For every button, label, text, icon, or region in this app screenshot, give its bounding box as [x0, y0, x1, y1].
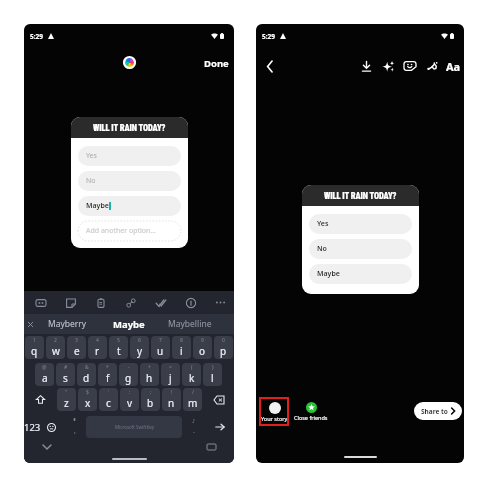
button[interactable]: 2 — [46, 336, 65, 359]
button[interactable]: & — [77, 363, 96, 386]
button[interactable]: 9 — [193, 336, 212, 359]
staticText: 3 — [75, 337, 78, 344]
button[interactable]: Close — [24, 314, 37, 334]
button[interactable]: Color — [124, 57, 135, 68]
staticText: @ — [42, 364, 47, 371]
button[interactable]: No — [309, 239, 412, 259]
staticText: p — [220, 344, 227, 358]
button[interactable]: ! — [162, 388, 181, 411]
button[interactable]: Enter — [206, 416, 234, 438]
button[interactable]: / — [183, 388, 202, 411]
staticText: Yes — [86, 151, 97, 161]
button[interactable]: Maybe — [98, 314, 159, 334]
button[interactable]: Clipboard — [86, 291, 116, 314]
button[interactable]: Your story — [259, 397, 289, 426]
button[interactable]: Spell check — [146, 291, 176, 314]
staticText: No — [317, 244, 327, 254]
staticText: s — [63, 371, 68, 385]
button[interactable]: Add another option... — [78, 221, 181, 241]
button[interactable]: 8 — [172, 336, 191, 359]
button[interactable]: Keyboard — [204, 440, 218, 454]
button[interactable]: Effects — [379, 57, 397, 75]
staticText: t — [117, 344, 121, 358]
staticText: 2 — [54, 337, 57, 344]
button[interactable]: Maybe — [309, 264, 412, 284]
button[interactable]: 6 — [130, 336, 149, 359]
button[interactable]: 5 — [109, 336, 128, 359]
button[interactable]: $ — [78, 388, 97, 411]
button[interactable]: No — [78, 171, 181, 191]
button[interactable]: * — [98, 363, 117, 386]
button[interactable]: Hide — [40, 440, 54, 454]
button[interactable]: - — [119, 363, 138, 386]
staticText: No — [86, 176, 96, 186]
staticText: ' — [108, 389, 110, 396]
staticText: Done — [204, 57, 229, 70]
button[interactable]: 123 — [24, 416, 41, 438]
button[interactable]: = — [161, 363, 180, 386]
staticText: & — [85, 364, 89, 371]
button[interactable]: Back — [262, 58, 278, 74]
button[interactable]: Draw — [423, 57, 441, 75]
staticText: 6 — [138, 337, 141, 344]
button[interactable]: ) — [203, 363, 222, 386]
button[interactable]: Close friends — [292, 402, 330, 421]
button[interactable]: : — [120, 388, 139, 411]
button[interactable]: Space — [86, 416, 182, 438]
staticText: Aa — [446, 59, 461, 74]
button[interactable]: # — [56, 363, 75, 386]
button[interactable]: @ — [35, 363, 54, 386]
staticText: 5:29 — [30, 32, 43, 41]
staticText: h — [146, 371, 153, 385]
staticText: m — [188, 396, 198, 410]
button[interactable]: Backspace — [204, 388, 233, 411]
button[interactable]: ( — [182, 363, 201, 386]
button[interactable]: ' — [99, 388, 118, 411]
button[interactable]: Comma — [62, 416, 86, 438]
button[interactable]: Mayberry — [37, 314, 98, 334]
staticText: u — [157, 344, 164, 358]
button[interactable]: Maybe — [78, 196, 181, 216]
staticText: 7 — [159, 337, 162, 344]
button[interactable]: Aa — [443, 57, 463, 75]
staticText: 1 — [33, 337, 36, 344]
staticText: " — [65, 389, 68, 396]
button[interactable]: Period — [182, 416, 206, 438]
button[interactable]: Emoji — [41, 416, 62, 438]
button[interactable]: Sticker — [56, 291, 86, 314]
staticText: 8 — [180, 337, 183, 344]
button[interactable]: ; — [141, 388, 160, 411]
button[interactable]: Info — [176, 291, 206, 314]
button[interactable]: Stickers — [401, 57, 419, 75]
button[interactable]: Yes — [309, 214, 412, 234]
staticText: Mayberry — [48, 318, 87, 330]
button[interactable]: Maybelline — [159, 314, 220, 334]
button[interactable]: Shift — [25, 388, 55, 411]
staticText: Your story — [261, 415, 288, 422]
button[interactable]: Done — [200, 54, 234, 73]
staticText: Yes — [317, 219, 329, 229]
staticText: WILL IT RAIN TODAY? — [93, 123, 166, 133]
button[interactable]: GIF — [26, 291, 56, 314]
staticText: j — [169, 371, 172, 385]
button[interactable]: 4 — [88, 336, 107, 359]
button[interactable]: 3 — [67, 336, 86, 359]
staticText: i — [180, 344, 183, 358]
button[interactable]: More — [206, 291, 234, 314]
button[interactable]: 0 — [214, 336, 233, 359]
button[interactable]: 7 — [151, 336, 170, 359]
button[interactable]: 1 — [25, 336, 44, 359]
staticText: n — [168, 396, 175, 410]
button[interactable]: " — [57, 388, 76, 411]
button[interactable]: Share to — [414, 402, 462, 420]
staticText: y — [137, 344, 143, 358]
button[interactable]: Translate — [116, 291, 146, 314]
staticText: Add another option... — [86, 226, 156, 236]
staticText: k — [189, 371, 195, 385]
staticText: Maybe — [317, 269, 340, 279]
staticText: $ — [86, 389, 89, 396]
button[interactable]: Yes — [78, 146, 181, 166]
button[interactable]: + — [140, 363, 159, 386]
staticText: = — [169, 364, 172, 371]
button[interactable]: Save — [357, 57, 375, 75]
